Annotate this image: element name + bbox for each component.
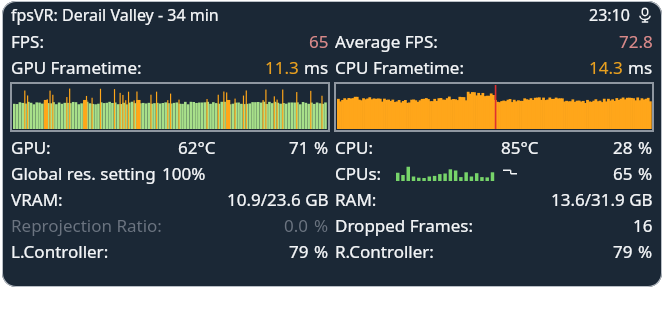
staticText: 85°C bbox=[501, 136, 539, 159]
button[interactable]: Reprojection Ratio: bbox=[11, 212, 329, 238]
staticText: % bbox=[638, 136, 653, 159]
button[interactable]: RAM: bbox=[335, 186, 653, 212]
staticText: % bbox=[638, 240, 653, 263]
staticText: CPUs: bbox=[335, 162, 382, 185]
button[interactable]: L.Controller: bbox=[11, 238, 329, 264]
button[interactable]: Dropped Frames: bbox=[335, 212, 653, 238]
staticText: % bbox=[638, 162, 653, 185]
staticText: CPU: bbox=[335, 136, 374, 159]
staticText: 79 bbox=[613, 240, 633, 263]
staticText: 79 bbox=[289, 240, 309, 263]
button[interactable]: VRAM: bbox=[11, 186, 329, 212]
staticText: R.Controller: bbox=[335, 240, 434, 263]
button[interactable]: FPS: bbox=[11, 28, 329, 54]
staticText: Reprojection Ratio: bbox=[11, 214, 162, 237]
staticText: 100% bbox=[162, 162, 206, 185]
staticText: Global res. setting bbox=[11, 162, 156, 185]
button[interactable]: Microphone bbox=[637, 7, 653, 23]
button[interactable]: CPUs: bbox=[335, 160, 653, 186]
staticText: 62°C bbox=[178, 136, 216, 159]
staticText: Dropped Frames: bbox=[335, 214, 473, 237]
staticText: 71 bbox=[289, 136, 309, 159]
staticText: VRAM: bbox=[11, 188, 63, 211]
button[interactable]: GPU Frametime: bbox=[11, 54, 329, 80]
staticText: L.Controller: bbox=[11, 240, 109, 263]
staticText: ms bbox=[304, 56, 329, 79]
staticText: 13.6/31.9 GB bbox=[551, 188, 653, 211]
staticText: ms bbox=[628, 56, 653, 79]
staticText: Average FPS: bbox=[335, 30, 438, 53]
staticText: % bbox=[314, 214, 329, 237]
button[interactable]: GPU: bbox=[11, 134, 329, 160]
staticText: 16 bbox=[633, 214, 653, 237]
staticText: % bbox=[314, 136, 329, 159]
staticText: 28 bbox=[613, 136, 633, 159]
button[interactable]: R.Controller: bbox=[335, 238, 653, 264]
staticText: 65 bbox=[309, 30, 329, 53]
staticText: 14.3 bbox=[589, 56, 623, 79]
button[interactable]: Global res. setting bbox=[11, 160, 329, 186]
button[interactable]: CPU: bbox=[335, 134, 653, 160]
staticText: 65 bbox=[613, 162, 633, 185]
staticText: FPS: bbox=[11, 30, 44, 53]
staticText: 23:10 bbox=[589, 4, 630, 26]
staticText: CPU Frametime: bbox=[335, 56, 464, 79]
staticText: 72.8 bbox=[619, 30, 653, 53]
staticText: RAM: bbox=[335, 188, 377, 211]
staticText: GPU: bbox=[11, 136, 51, 159]
button[interactable]: CPU Frametime: bbox=[335, 54, 653, 80]
button[interactable]: Average FPS: bbox=[335, 28, 653, 54]
staticText: GPU Frametime: bbox=[11, 56, 142, 79]
staticText: fpsVR: Derail Valley - 34 min bbox=[11, 4, 219, 26]
staticText: 11.3 bbox=[265, 56, 299, 79]
staticText: % bbox=[314, 240, 329, 263]
staticText: 0.0 bbox=[284, 214, 309, 237]
staticText: 10.9/23.6 GB bbox=[227, 188, 329, 211]
